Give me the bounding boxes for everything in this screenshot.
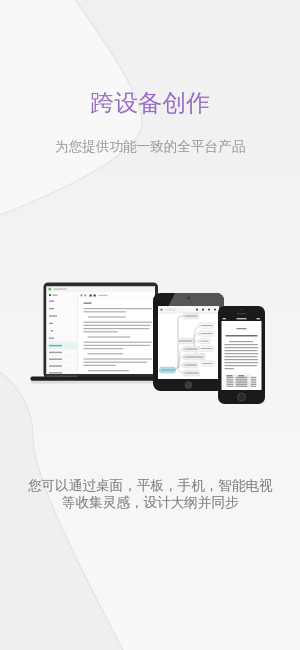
staticText: 等收集灵感，设计大纲并同步	[62, 494, 239, 511]
staticText: 您可以通过桌面，平板，手机，智能电视	[28, 477, 273, 494]
staticText: 跨设备创作	[90, 88, 210, 118]
staticText: 为您提供功能一致的全平台产品	[55, 138, 246, 155]
